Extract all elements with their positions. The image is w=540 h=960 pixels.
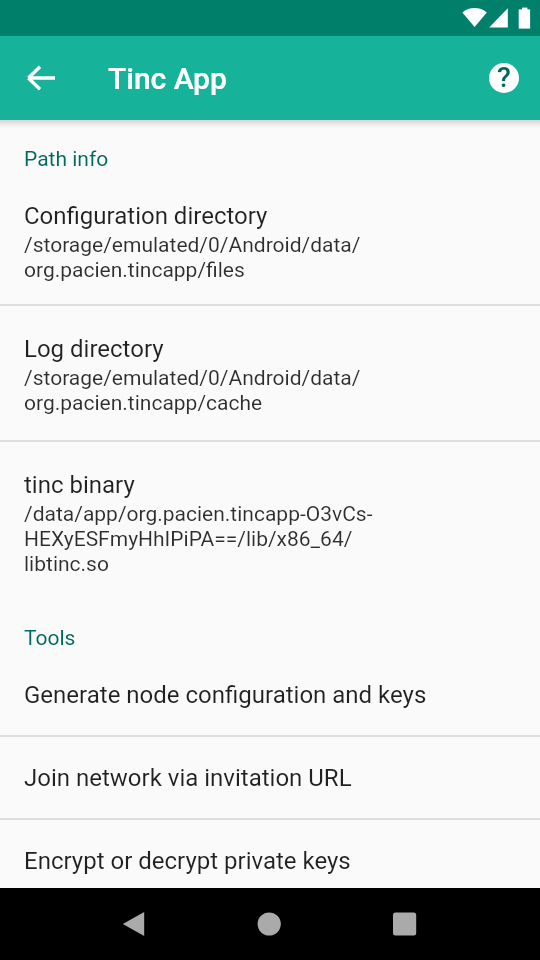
staticText: Configuration directory — [24, 202, 268, 230]
staticText: org.pacien.tincapp/files — [24, 258, 245, 283]
staticText: ? — [497, 61, 511, 94]
staticText: HEXyESFmyHhIPiPA==/lib/x86_64/ — [24, 527, 353, 552]
staticText: Encrypt or decrypt private keys — [24, 847, 351, 875]
button[interactable]: Generate node configuration and keys — [0, 654, 540, 735]
button[interactable]: tinc binary — [0, 471, 540, 577]
staticText: Tinc App — [108, 61, 227, 96]
staticText: libtinc.so — [24, 552, 109, 577]
staticText: Generate node configuration and keys — [24, 681, 427, 709]
button[interactable]: Help — [468, 42, 540, 114]
button[interactable]: Join network via invitation URL — [0, 737, 540, 818]
staticText: org.pacien.tincapp/cache — [24, 391, 263, 416]
staticText: tinc binary — [24, 471, 135, 499]
staticText: Log directory — [24, 335, 164, 363]
button[interactable]: Log directory — [0, 335, 540, 416]
button[interactable]: Encrypt or decrypt private keys — [0, 820, 540, 901]
button[interactable]: Configuration directory — [0, 202, 540, 283]
staticText: /storage/emulated/0/Android/data/ — [24, 366, 361, 391]
staticText: /data/app/org.pacien.tincapp-O3vCs- — [24, 502, 373, 527]
staticText: Join network via invitation URL — [24, 764, 352, 792]
staticText: /storage/emulated/0/Android/data/ — [24, 233, 361, 258]
staticText: Path info — [24, 147, 109, 172]
staticText: Tools — [24, 626, 76, 651]
button[interactable]: Back — [6, 42, 78, 114]
